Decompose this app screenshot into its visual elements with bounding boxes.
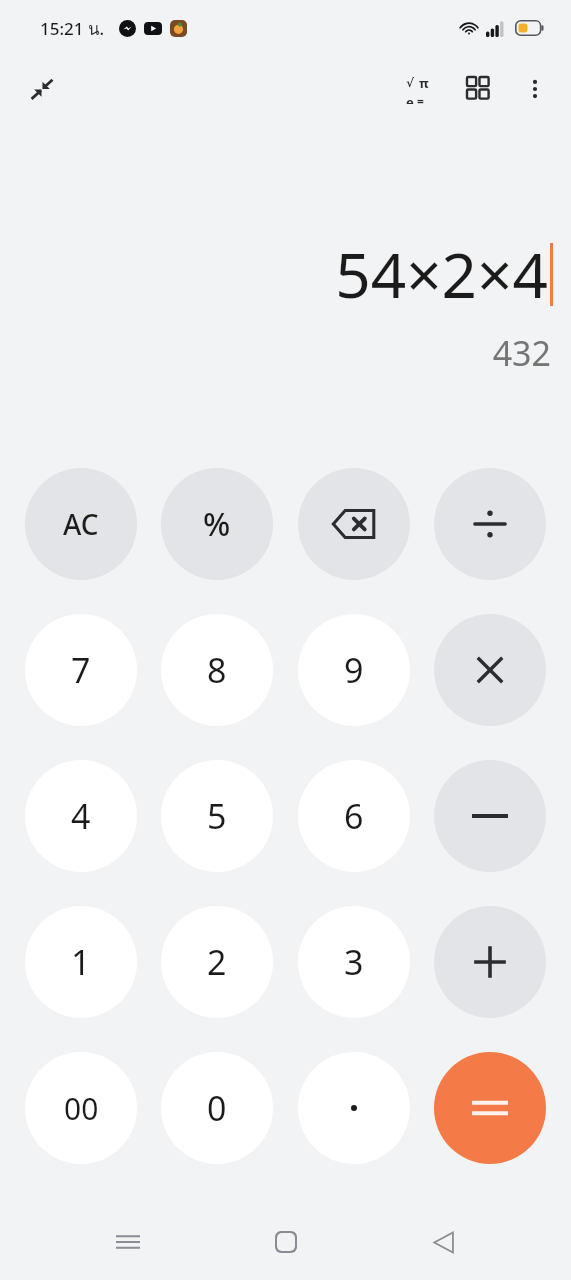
staticText: 2	[207, 939, 227, 985]
staticText: 7	[71, 647, 91, 693]
staticText: 6	[344, 793, 364, 839]
button[interactable]: 7	[25, 614, 137, 726]
staticText: 54×2×4	[335, 232, 548, 316]
button[interactable]: 5	[161, 760, 273, 872]
staticText: =	[417, 93, 424, 104]
staticText: e	[406, 93, 414, 104]
staticText: 5	[207, 793, 227, 839]
button[interactable]: Home	[256, 1212, 316, 1272]
button[interactable]: Back	[413, 1212, 473, 1272]
staticText: 00	[64, 1088, 99, 1129]
button[interactable]: AC	[25, 468, 137, 580]
button[interactable]: Collapse	[14, 61, 70, 117]
button[interactable]: 3	[298, 906, 410, 1018]
staticText: 9	[344, 647, 364, 693]
button[interactable]: Multiply	[434, 614, 546, 726]
staticText: 0	[207, 1085, 227, 1131]
button[interactable]: 4	[25, 760, 137, 872]
button[interactable]: More options	[507, 61, 563, 117]
button[interactable]: Divide	[434, 468, 546, 580]
button[interactable]: 8	[161, 614, 273, 726]
staticText: %	[203, 502, 231, 546]
staticText: 3	[344, 939, 364, 985]
button[interactable]: 6	[298, 760, 410, 872]
button[interactable]: Equals	[434, 1052, 546, 1164]
button[interactable]: Backspace	[298, 468, 410, 580]
button[interactable]: %	[161, 468, 273, 580]
staticText: 8	[207, 647, 227, 693]
staticText: 1	[71, 939, 91, 985]
button[interactable]: Plus	[434, 906, 546, 1018]
button[interactable]: Minus	[434, 760, 546, 872]
staticText: AC	[63, 505, 99, 543]
button[interactable]: Scientific mode	[395, 61, 451, 117]
staticText: √	[406, 76, 415, 90]
button[interactable]: 2	[161, 906, 273, 1018]
button[interactable]: Unit converter	[451, 61, 507, 117]
button[interactable]: Decimal point	[298, 1052, 410, 1164]
button[interactable]: 1	[25, 906, 137, 1018]
button[interactable]: 0	[161, 1052, 273, 1164]
staticText: π	[419, 74, 429, 92]
staticText: 15:21 น.	[40, 15, 105, 42]
button[interactable]: Recent apps	[98, 1212, 158, 1272]
staticText: 432	[492, 330, 551, 376]
staticText: 4	[71, 793, 91, 839]
button[interactable]: 00	[25, 1052, 137, 1164]
button[interactable]: 9	[298, 614, 410, 726]
